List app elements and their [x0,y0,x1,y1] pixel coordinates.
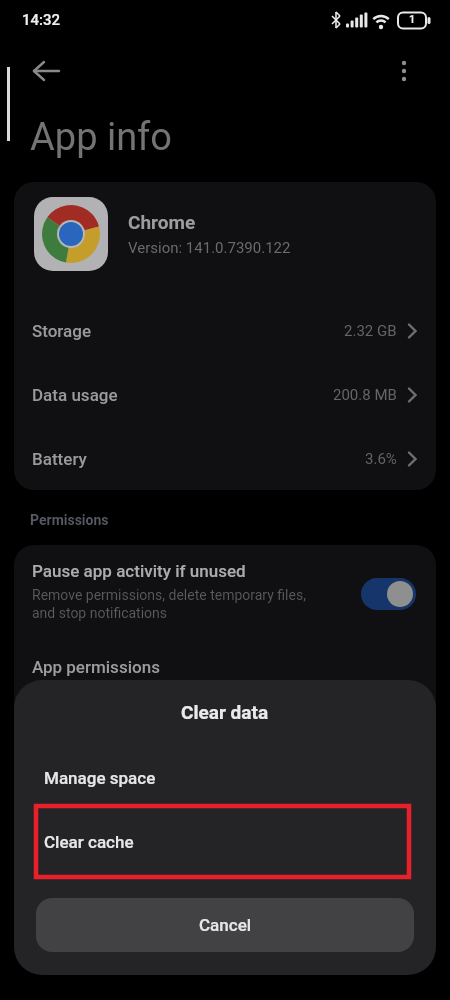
staticText: Clear data [181,701,269,723]
staticText: Cancel [199,915,252,935]
staticText: App info [30,115,172,160]
button[interactable]: Data usage [14,363,436,427]
staticText: 2.32 GB [344,322,397,340]
button[interactable] [361,578,416,610]
staticText: Chrome [128,211,196,233]
button[interactable]: App permissions [32,657,160,677]
staticText: Data usage [32,385,118,405]
button[interactable] [22,52,70,90]
button[interactable]: Storage [14,299,436,363]
button[interactable] [388,55,420,87]
button[interactable]: Battery [14,427,436,490]
button[interactable]: Clear cache [14,806,436,877]
staticText: Version: 141.0.7390.122 [128,239,291,257]
staticText: Storage [32,321,92,341]
button[interactable]: Pause app activity if unused [14,545,436,645]
staticText: Clear cache [44,832,134,852]
staticText: 3.6% [365,450,397,468]
staticText: Battery [32,449,87,469]
button[interactable]: Manage space [14,747,436,809]
staticText: 14:32 [22,11,61,29]
button[interactable]: Cancel [36,898,414,952]
staticText: Remove permissions, delete temporary fil… [32,587,306,622]
staticText: Manage space [44,768,156,788]
staticText: Permissions [30,512,109,528]
staticText: 1 [409,13,416,26]
staticText: Pause app activity if unused [32,561,246,581]
staticText: 200.8 MB [333,386,397,404]
